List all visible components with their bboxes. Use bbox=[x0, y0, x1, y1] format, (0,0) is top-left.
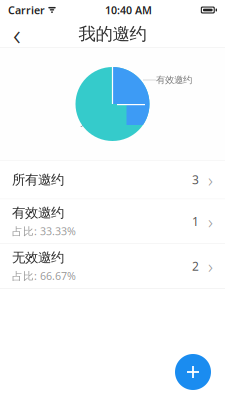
staticText: 1 bbox=[192, 213, 199, 229]
staticText: › bbox=[208, 254, 213, 278]
staticText: Carrier bbox=[8, 3, 45, 17]
staticText: 我的邀约 bbox=[78, 23, 146, 45]
staticText: 10:40 AM bbox=[105, 3, 152, 17]
staticText: 所有邀约 bbox=[12, 171, 64, 188]
staticText: 占比: 33.33% bbox=[12, 224, 76, 238]
staticText: 3 bbox=[192, 172, 199, 188]
staticText: 有效邀约 bbox=[12, 205, 64, 221]
button[interactable]: Add invitation bbox=[175, 354, 211, 390]
staticText: 有效邀约 bbox=[156, 74, 192, 86]
staticText: 无效邀约 bbox=[80, 117, 116, 129]
staticText: › bbox=[208, 167, 213, 192]
staticText: 占比: 66.67% bbox=[12, 269, 76, 283]
staticText: › bbox=[208, 209, 213, 234]
staticText: ‹ bbox=[13, 14, 21, 53]
button[interactable]: 无效邀约 bbox=[0, 244, 225, 288]
staticText: 无效邀约 bbox=[12, 249, 64, 266]
button[interactable]: Back bbox=[0, 20, 34, 48]
staticText: 2 bbox=[192, 258, 199, 274]
button[interactable]: 有效邀约 bbox=[0, 199, 225, 243]
button[interactable]: 所有邀约 bbox=[0, 161, 225, 199]
